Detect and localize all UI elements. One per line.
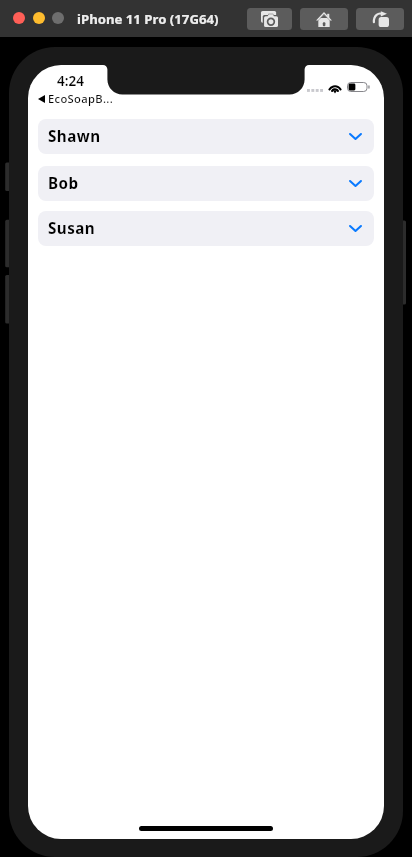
button[interactable]: Shawn: [38, 119, 374, 154]
button[interactable]: Minimize: [33, 12, 45, 24]
button[interactable]: Screenshot: [247, 8, 292, 30]
staticText: iPhone 11 Pro (17G64): [77, 10, 219, 28]
button[interactable]: Susan: [38, 211, 374, 246]
staticText: Shawn: [48, 126, 101, 147]
staticText: 4:24: [57, 72, 84, 90]
button[interactable]: Close: [13, 12, 25, 24]
staticText: Bob: [48, 173, 79, 194]
button[interactable]: Bob: [38, 166, 374, 201]
staticText: Susan: [48, 218, 96, 239]
button[interactable]: Home: [300, 8, 348, 30]
button[interactable]: Share: [356, 8, 404, 30]
button[interactable]: Zoom: [52, 12, 64, 24]
staticText: EcoSoapB...: [48, 91, 114, 106]
